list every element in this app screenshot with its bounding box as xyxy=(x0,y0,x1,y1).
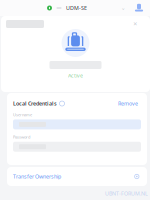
staticText: UDM-SE xyxy=(66,4,87,12)
button[interactable]: Device console xyxy=(134,3,144,13)
button[interactable]: Close xyxy=(131,20,139,28)
staticText: Local Credentials xyxy=(13,100,57,107)
button[interactable]: UDM-SE xyxy=(47,4,87,12)
button[interactable]: Remove xyxy=(118,100,138,107)
staticText: Password xyxy=(13,134,30,140)
staticText: ✕ xyxy=(133,21,137,27)
staticText: UBNT-FORUM.NL xyxy=(105,190,148,197)
staticText: ⌄ xyxy=(121,5,125,11)
staticText: Transfer Ownership xyxy=(13,173,61,180)
button[interactable]: Switch site xyxy=(120,4,126,12)
staticText: Remove xyxy=(118,100,138,107)
button[interactable]: Transfer Ownership xyxy=(7,167,147,186)
staticText: Username xyxy=(13,112,32,117)
staticText: Active xyxy=(68,72,83,79)
